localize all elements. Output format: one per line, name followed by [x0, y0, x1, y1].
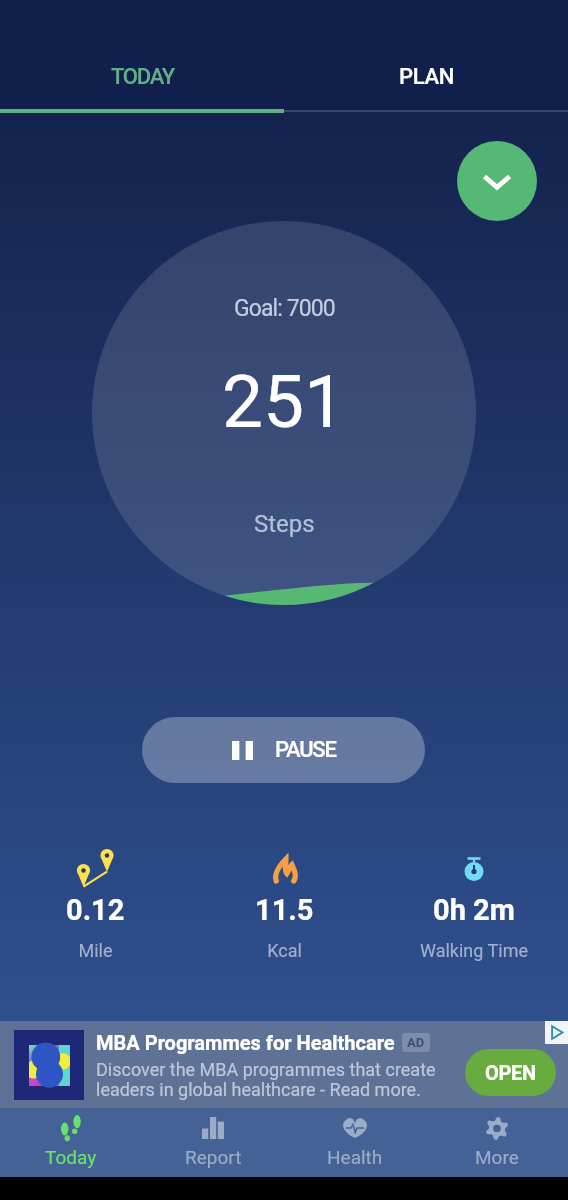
button[interactable]: Today — [0, 1108, 142, 1177]
staticText: Health — [327, 1146, 383, 1168]
staticText: Goal: 7000 — [234, 295, 335, 322]
staticText: Walking Time — [420, 940, 528, 961]
button[interactable]: 11.5 — [190, 851, 379, 961]
staticText: 0.12 — [66, 893, 125, 927]
staticText: Mile — [78, 940, 113, 961]
staticText: Report — [185, 1146, 242, 1168]
staticText: Kcal — [267, 940, 302, 961]
button[interactable]: Expand — [457, 141, 537, 221]
staticText: MBA Programmes for Healthcare — [96, 1031, 395, 1054]
button[interactable]: 0.12 — [0, 851, 190, 961]
staticText: Today — [45, 1146, 97, 1168]
button[interactable]: More — [426, 1108, 568, 1177]
staticText: 0h 2m — [433, 893, 515, 927]
button[interactable]: 0h 2m — [379, 851, 568, 961]
staticText: 251 — [222, 359, 346, 445]
button[interactable]: TODAY — [0, 0, 284, 113]
staticText: PLAN — [399, 64, 454, 90]
staticText: Discover the MBA programmes that create … — [96, 1059, 436, 1100]
button[interactable]: Report — [142, 1108, 284, 1177]
button[interactable]: Ad choices — [545, 1021, 568, 1044]
staticText: 11.5 — [255, 893, 314, 927]
staticText: More — [475, 1146, 519, 1168]
button[interactable]: PAUSE — [142, 717, 425, 783]
button[interactable]: Health — [284, 1108, 426, 1177]
staticText: PAUSE — [275, 737, 336, 763]
staticText: OPEN — [485, 1061, 536, 1084]
button[interactable]: PLAN — [284, 0, 568, 113]
staticText: AD — [407, 1035, 425, 1050]
staticText: Steps — [254, 510, 315, 538]
staticText: TODAY — [111, 64, 174, 90]
button[interactable]: OPEN — [465, 1049, 556, 1096]
